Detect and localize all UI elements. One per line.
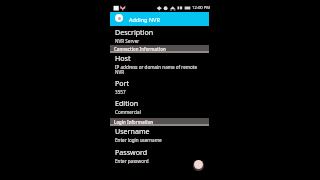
staticText: Description bbox=[115, 27, 205, 37]
staticText: Port bbox=[115, 78, 205, 88]
staticText: Enter password bbox=[115, 158, 203, 164]
staticText: Enter login username bbox=[115, 137, 203, 143]
staticText: IP address or domain name of remote NVR bbox=[115, 64, 202, 76]
staticText: Adding NVR bbox=[129, 16, 179, 23]
staticText: Edition bbox=[115, 98, 205, 108]
staticText: Connection Information bbox=[114, 46, 174, 52]
button[interactable]: Username bbox=[110, 125, 209, 146]
staticText: Commercial bbox=[115, 109, 203, 115]
staticText: 3557 bbox=[115, 89, 203, 95]
button[interactable]: Host bbox=[110, 52, 209, 77]
button[interactable]: Edition bbox=[110, 97, 209, 118]
staticText: 12:00 PM bbox=[192, 5, 212, 11]
button[interactable]: Description bbox=[110, 26, 209, 44]
button[interactable]: Password bbox=[110, 146, 209, 167]
staticText: Password bbox=[115, 147, 205, 157]
staticText: Host bbox=[115, 53, 205, 63]
staticText: NVR Server bbox=[115, 38, 203, 44]
staticText: Login Information bbox=[114, 119, 174, 125]
button[interactable]: Port bbox=[110, 77, 209, 97]
button[interactable]: Adding NVR bbox=[110, 12, 209, 26]
staticText: Username bbox=[115, 126, 205, 136]
